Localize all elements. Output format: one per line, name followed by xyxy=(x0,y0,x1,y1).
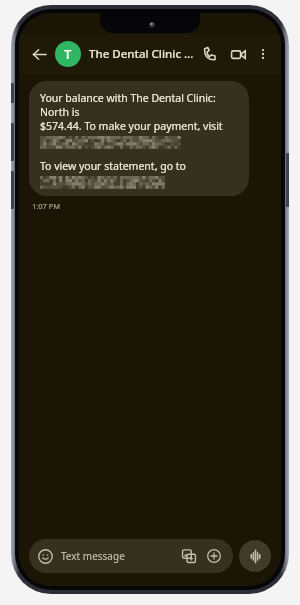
staticText: T xyxy=(64,45,72,63)
button[interactable]: Attach image xyxy=(179,546,199,566)
staticText: Your balance with The Dental Clinic: Nor… xyxy=(40,91,238,119)
button[interactable]: Back xyxy=(26,41,52,67)
button[interactable]: Text message xyxy=(29,539,233,573)
staticText: $574.44. To make your payment, visit xyxy=(40,119,223,133)
button[interactable]: Record audio xyxy=(239,540,271,572)
staticText: The Dental Clinic No... xyxy=(89,46,196,62)
staticText: To view your statement, go to xyxy=(40,159,186,173)
button[interactable]: Your balance with The Dental Clinic: Nor… xyxy=(29,81,249,196)
staticText: Text message xyxy=(61,549,125,563)
button[interactable]: The Dental Clinic No... xyxy=(89,46,196,62)
button[interactable]: Call xyxy=(196,40,224,68)
button[interactable]: More attachments xyxy=(204,546,224,566)
staticText: 1:07 PM xyxy=(32,201,61,211)
button[interactable]: Contact avatar xyxy=(55,41,81,67)
button[interactable]: More options xyxy=(252,43,274,65)
button[interactable]: Video call xyxy=(224,40,252,68)
